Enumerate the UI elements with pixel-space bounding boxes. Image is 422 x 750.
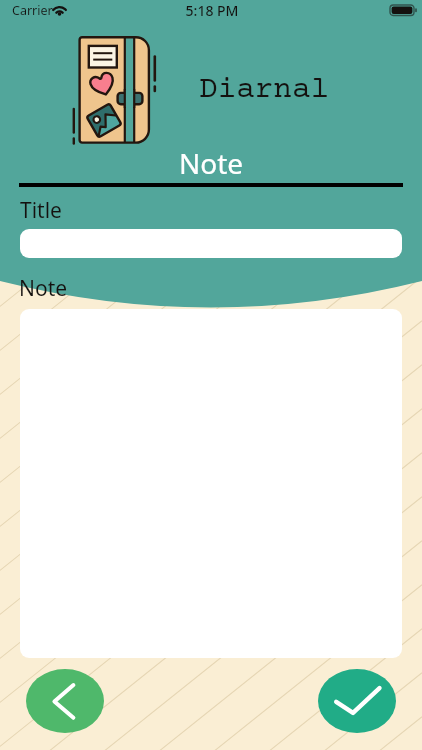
- staticText: Note: [19, 274, 68, 303]
- staticText: Diarnal: [199, 73, 330, 108]
- button[interactable]: Save: [318, 669, 396, 733]
- staticText: Carrier: [12, 2, 53, 19]
- staticText: Note: [0, 144, 422, 182]
- button[interactable]: [20, 229, 402, 258]
- button[interactable]: Back: [26, 669, 104, 733]
- staticText: Title: [20, 196, 62, 225]
- staticText: 5:18 PM: [1, 1, 422, 20]
